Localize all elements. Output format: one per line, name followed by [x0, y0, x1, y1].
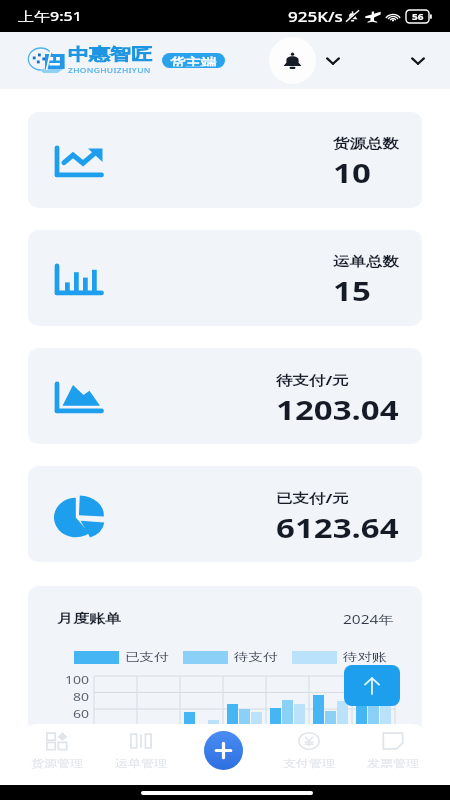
staticText: 货源总数 — [333, 135, 399, 152]
button[interactable]: 待支付/元 — [28, 348, 422, 444]
staticText: 1203.04 — [276, 391, 399, 427]
button[interactable]: 运单管理 — [99, 724, 183, 778]
staticText: 货主端 — [170, 54, 217, 66]
staticText: 待支付 — [234, 650, 278, 664]
button[interactable]: 货主端 — [162, 53, 225, 68]
button[interactable]: Expand — [322, 50, 344, 72]
staticText: 中惠智匠 — [68, 44, 152, 64]
staticText: 已支付/元 — [276, 488, 349, 507]
button[interactable]: Notifications — [269, 37, 316, 84]
staticText: 月度账单 — [57, 611, 121, 627]
staticText: 运单管理 — [115, 757, 167, 769]
staticText: 60 — [73, 706, 90, 719]
staticText: 发票管理 — [367, 757, 419, 769]
staticText: 40 — [73, 723, 90, 736]
staticText: 运单总数 — [333, 253, 399, 270]
staticText: 待支付/元 — [276, 370, 349, 389]
button[interactable]: 货源总数 — [28, 112, 422, 208]
staticText: ZHONGHUIZHIYUN — [68, 66, 151, 76]
staticText: 货源管理 — [31, 757, 83, 769]
staticText: 925K/s — [288, 7, 343, 26]
staticText: 15 — [333, 272, 371, 308]
staticText: 10 — [333, 154, 371, 190]
staticText: 已支付 — [125, 650, 169, 664]
button[interactable]: Scroll to top — [344, 665, 400, 706]
button[interactable]: More — [407, 50, 429, 72]
staticText: 上午9:51 — [18, 7, 82, 25]
staticText: 80 — [73, 689, 90, 702]
staticText: 2024年 — [343, 610, 394, 627]
button[interactable]: 发票管理 — [351, 724, 435, 778]
staticText: 56 — [412, 11, 424, 22]
button[interactable]: 已支付/元 — [28, 466, 422, 562]
button[interactable]: 运单总数 — [28, 230, 422, 326]
staticText: 100 — [65, 672, 90, 685]
button[interactable]: 货源管理 — [14, 724, 99, 778]
button[interactable]: 支付管理 — [267, 724, 351, 778]
staticText: 支付管理 — [283, 757, 335, 769]
staticText: 待对账 — [343, 650, 387, 664]
button[interactable]: Add — [204, 731, 243, 770]
staticText: 6123.64 — [276, 509, 399, 545]
